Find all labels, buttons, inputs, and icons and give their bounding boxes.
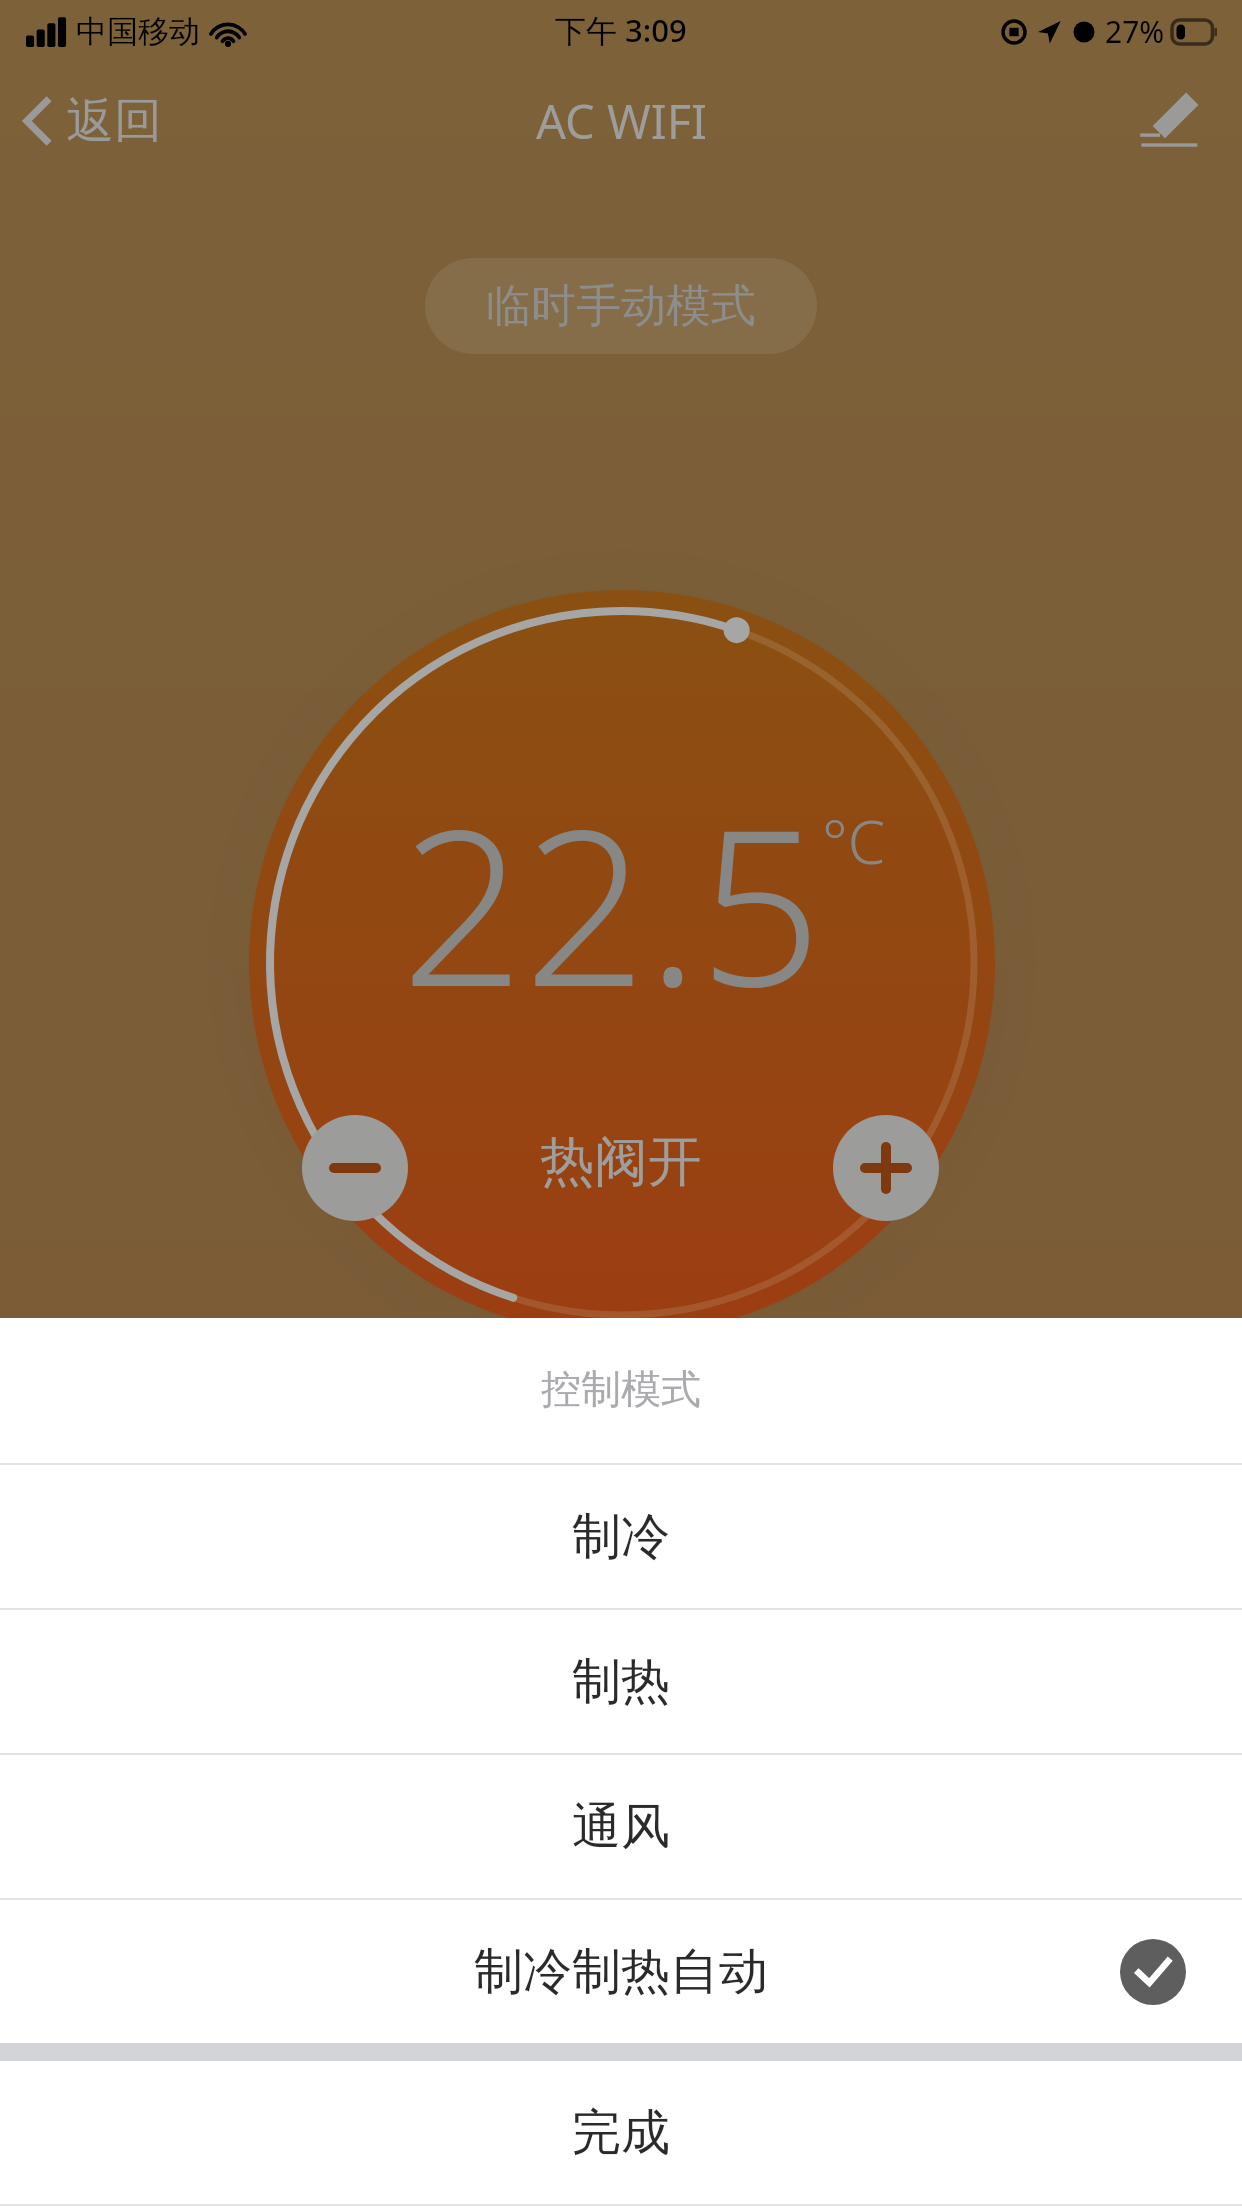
button[interactable]: Increase temperature bbox=[833, 1115, 939, 1221]
staticText: 返回 bbox=[66, 91, 162, 151]
staticText: AC WIFI bbox=[536, 89, 707, 153]
staticText: 临时手动模式 bbox=[486, 278, 756, 335]
staticText: 完成 bbox=[572, 2102, 670, 2164]
button[interactable]: 制冷 bbox=[0, 1465, 1242, 1608]
staticText: 下午 3:09 bbox=[555, 9, 687, 51]
button[interactable]: 返回 bbox=[22, 91, 162, 151]
staticText: 22.5 bbox=[401, 756, 822, 1049]
staticText: 27% bbox=[1105, 11, 1165, 52]
staticText: 中国移动 bbox=[76, 12, 200, 51]
staticText: 制冷 bbox=[572, 1506, 670, 1568]
staticText: 控制模式 bbox=[541, 1364, 701, 1414]
staticText: 制热 bbox=[572, 1651, 670, 1713]
button[interactable]: Edit bbox=[1126, 77, 1214, 165]
button[interactable]: 制热 bbox=[0, 1610, 1242, 1753]
button[interactable]: 临时手动模式 bbox=[425, 258, 817, 354]
staticText: 通风 bbox=[572, 1796, 670, 1858]
staticText: °C bbox=[822, 800, 886, 882]
staticText: 热阀开 bbox=[540, 1128, 702, 1196]
button[interactable]: 完成 bbox=[0, 2061, 1242, 2204]
button[interactable]: 制冷制热自动 bbox=[0, 1900, 1242, 2043]
button[interactable]: Decrease temperature bbox=[302, 1115, 408, 1221]
staticText: 制冷制热自动 bbox=[474, 1941, 768, 2003]
button[interactable]: 通风 bbox=[0, 1755, 1242, 1898]
